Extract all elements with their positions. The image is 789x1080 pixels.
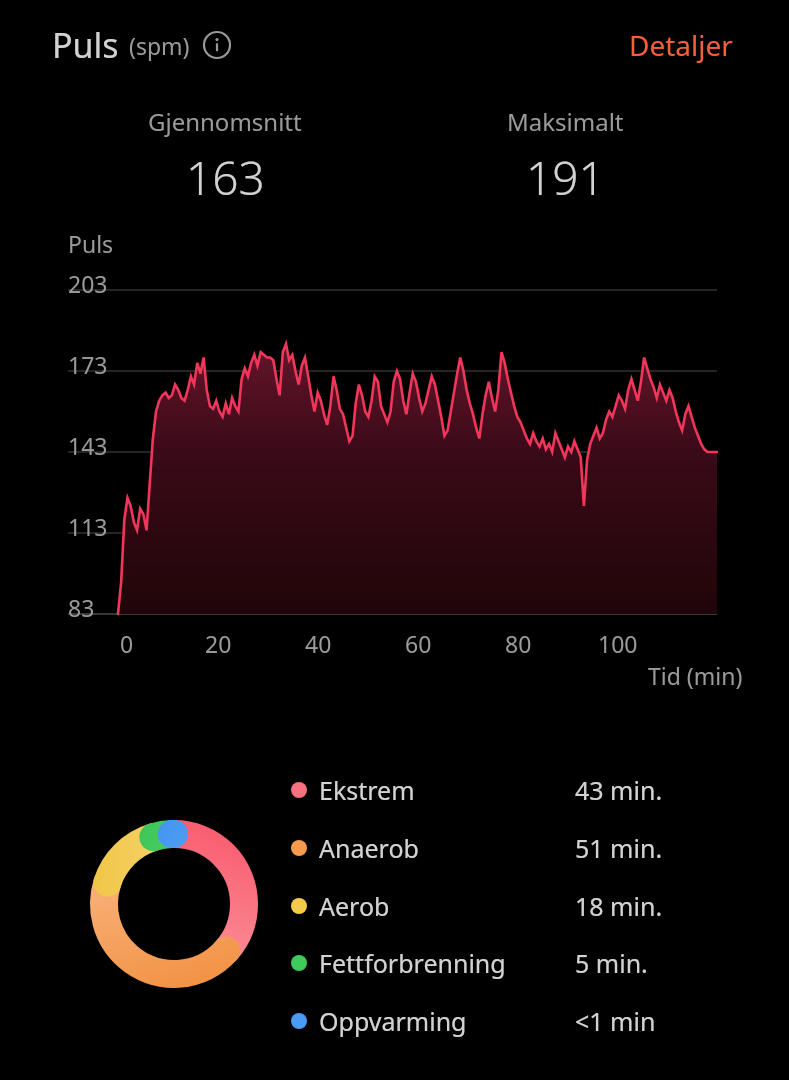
staticText: 100 bbox=[598, 628, 638, 659]
staticText: 203 bbox=[68, 268, 108, 299]
button[interactable]: Anaerob bbox=[285, 826, 705, 870]
staticText: Maksimalt bbox=[507, 105, 624, 138]
button[interactable]: Informasjon om puls bbox=[202, 30, 232, 60]
staticText: 80 bbox=[505, 628, 532, 659]
staticText: 51 min. bbox=[575, 831, 663, 865]
staticText: Detaljer bbox=[629, 26, 733, 64]
button[interactable]: Aerob bbox=[285, 884, 705, 928]
staticText: 191 bbox=[526, 146, 605, 209]
staticText: 0 bbox=[120, 628, 134, 659]
staticText: 83 bbox=[68, 592, 95, 623]
staticText: 163 bbox=[186, 146, 265, 209]
staticText: 20 bbox=[205, 628, 232, 659]
button[interactable]: Detaljer bbox=[625, 22, 737, 68]
button[interactable]: Ekstrem bbox=[285, 768, 705, 812]
staticText: 113 bbox=[68, 511, 108, 542]
staticText: 5 min. bbox=[575, 946, 648, 980]
staticText: Tid (min) bbox=[648, 660, 743, 691]
staticText: Fettforbrenning bbox=[319, 946, 506, 980]
staticText: Puls bbox=[68, 228, 114, 259]
staticText: 143 bbox=[68, 430, 108, 461]
staticText: Puls bbox=[52, 22, 119, 68]
staticText: (spm) bbox=[129, 30, 190, 61]
button[interactable]: Fettforbrenning bbox=[285, 941, 705, 985]
staticText: Oppvarming bbox=[319, 1004, 467, 1038]
staticText: 43 min. bbox=[575, 773, 663, 807]
staticText: Ekstrem bbox=[319, 773, 415, 807]
staticText: 60 bbox=[405, 628, 432, 659]
staticText: Anaerob bbox=[319, 831, 419, 865]
staticText: 173 bbox=[68, 349, 108, 380]
staticText: <1 min bbox=[575, 1004, 656, 1038]
button[interactable]: Oppvarming bbox=[285, 999, 705, 1043]
staticText: Gjennomsnitt bbox=[148, 105, 302, 138]
staticText: 18 min. bbox=[575, 889, 663, 923]
staticText: Aerob bbox=[319, 889, 390, 923]
staticText: 40 bbox=[305, 628, 332, 659]
